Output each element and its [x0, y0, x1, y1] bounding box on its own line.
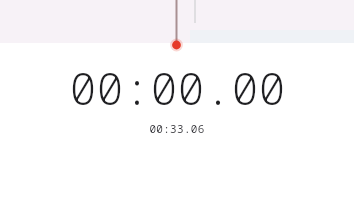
staticText: 00:33.06 [149, 121, 205, 136]
staticText: 00:00.00 [69, 57, 286, 118]
other: Timeline marker [0, 0, 354, 199]
button[interactable]: 00:00.00 [0, 57, 354, 136]
